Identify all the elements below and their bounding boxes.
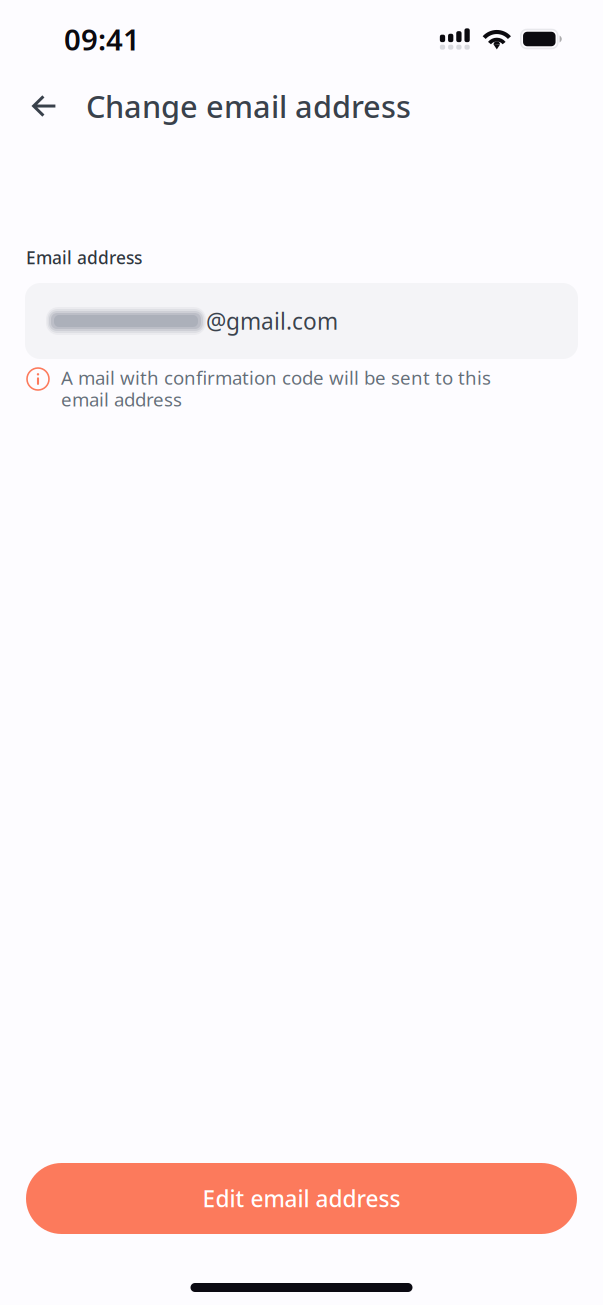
staticText: A mail with confirmation code will be se… — [61, 365, 491, 412]
staticText: Email address — [26, 246, 142, 269]
button[interactable]: Edit email address — [0, 1163, 603, 1234]
staticText: 09:41 — [64, 19, 140, 58]
staticText: Change email address — [86, 86, 411, 126]
staticText: Edit email address — [202, 1183, 400, 1213]
button[interactable]: Back — [0, 80, 86, 132]
staticText: @gmail.com — [206, 306, 338, 336]
